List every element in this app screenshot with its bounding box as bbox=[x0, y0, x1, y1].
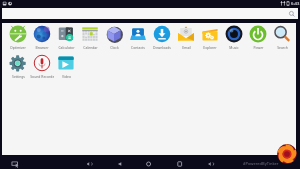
button[interactable]: Optimizer bbox=[6, 23, 30, 46]
staticText: Explorer bbox=[203, 45, 217, 50]
staticText: Music bbox=[229, 45, 239, 50]
button[interactable]: Email bbox=[174, 23, 198, 46]
button[interactable]: Sound Recorder bbox=[30, 52, 54, 75]
button[interactable]: Calculator bbox=[54, 23, 78, 46]
button[interactable]: Contacts bbox=[126, 23, 150, 46]
button[interactable]: Browser bbox=[30, 23, 54, 46]
staticText: 6:43 bbox=[291, 1, 300, 7]
button[interactable]: Video bbox=[54, 52, 78, 75]
staticText: Sound Recorder bbox=[30, 74, 54, 79]
staticText: Optimizer bbox=[10, 45, 26, 50]
staticText: Clock bbox=[110, 45, 119, 50]
staticText: #PoweredByTinker bbox=[243, 161, 279, 166]
staticText: Contacts bbox=[131, 45, 145, 50]
staticText: Downloads bbox=[153, 45, 171, 50]
button[interactable]: Volume up bbox=[196, 156, 210, 169]
staticText: Browser bbox=[35, 45, 49, 50]
button[interactable]: Downloads bbox=[150, 23, 174, 46]
button[interactable]: Explorer bbox=[198, 23, 222, 46]
button[interactable]: Calendar bbox=[78, 23, 102, 46]
button[interactable]: Recents bbox=[166, 156, 180, 169]
button[interactable]: Volume down bbox=[82, 156, 96, 169]
staticText: Calculator bbox=[58, 45, 75, 50]
button[interactable]: Search bbox=[270, 23, 294, 46]
button[interactable]: Settings bbox=[6, 52, 30, 75]
staticText: Settings bbox=[12, 74, 25, 79]
button[interactable]: Clock bbox=[102, 23, 126, 46]
button[interactable]: Search bbox=[2, 8, 298, 19]
button[interactable]: Home bbox=[138, 156, 152, 169]
staticText: Calendar bbox=[83, 45, 98, 50]
staticText: Power bbox=[253, 45, 264, 50]
button[interactable]: Keyboard bbox=[8, 156, 22, 169]
button[interactable]: Power bbox=[246, 23, 270, 46]
staticText: Search bbox=[277, 45, 288, 50]
button[interactable]: Music bbox=[222, 23, 246, 46]
staticText: Email bbox=[182, 45, 191, 50]
button[interactable]: Back bbox=[110, 156, 124, 169]
staticText: Video bbox=[62, 74, 71, 79]
